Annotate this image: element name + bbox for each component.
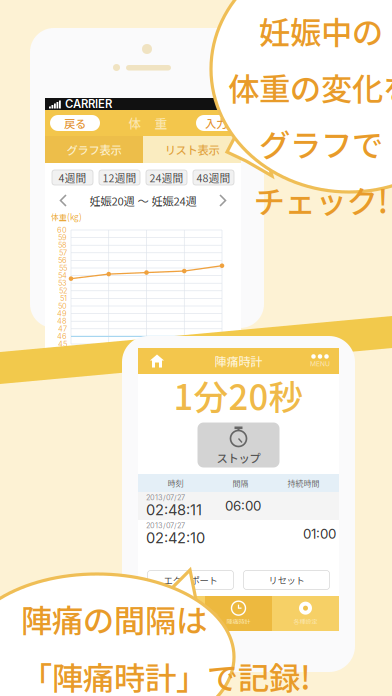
staticText: 妊娠中の xyxy=(259,8,383,53)
staticText: 06:00 xyxy=(225,498,261,514)
button[interactable]: リスト表示 xyxy=(143,136,241,163)
staticText: 50 xyxy=(58,302,67,310)
staticText: 陣痛時計 xyxy=(214,352,262,370)
button[interactable]: 入力 xyxy=(196,115,236,131)
staticText: 時刻 xyxy=(167,477,183,489)
staticText: ストップ xyxy=(216,449,260,466)
staticText: 1分20秒 xyxy=(173,370,303,420)
staticText: CARRIER xyxy=(65,97,112,111)
staticText: 間隔 xyxy=(232,477,248,489)
staticText: リセット xyxy=(268,573,304,587)
staticText: 51 xyxy=(60,294,67,303)
button[interactable]: 次の週 xyxy=(210,193,234,208)
staticText: 陣痛の間隔は xyxy=(21,596,207,641)
button[interactable]: ストップ xyxy=(197,422,279,467)
button[interactable]: エクスポート xyxy=(147,570,233,589)
staticText: リスト表示 xyxy=(164,141,219,158)
button[interactable]: 12週間 xyxy=(99,170,140,185)
staticText: 2013/07/27 xyxy=(146,521,185,530)
staticText: 24週間 xyxy=(149,170,183,185)
staticText: 12週間 xyxy=(102,170,136,185)
button[interactable]: 前の週 xyxy=(52,193,76,208)
staticText: 60 xyxy=(57,226,67,234)
staticText: 52 xyxy=(59,286,67,295)
staticText: 2013/07/27 xyxy=(146,493,185,502)
button[interactable]: 各種設定 xyxy=(272,596,339,631)
staticText: グラフで xyxy=(259,121,383,166)
button[interactable]: ホーム xyxy=(142,348,172,374)
staticText: 体重の変化を xyxy=(228,64,392,110)
staticText: 各種設定 xyxy=(293,617,317,626)
button[interactable]: 戻る xyxy=(50,115,100,131)
staticText: 体重(kg) xyxy=(51,211,82,223)
staticText: 58 xyxy=(58,241,67,250)
staticText: チェック! xyxy=(253,177,388,222)
button[interactable]: 4週間 xyxy=(52,170,93,185)
staticText: 48 xyxy=(57,317,67,326)
button[interactable]: メニュー xyxy=(305,348,335,374)
staticText: 4週間 xyxy=(58,170,86,185)
staticText: 陣痛時計 xyxy=(226,617,250,626)
staticText: 53 xyxy=(58,279,67,288)
staticText: 48週間 xyxy=(196,170,230,185)
staticText: グラフ表示 xyxy=(66,141,121,158)
staticText: 02:42:10 xyxy=(146,529,205,547)
button[interactable]: カレンダー xyxy=(138,596,205,631)
staticText: 持続時間 xyxy=(287,477,319,489)
staticText: 戻る xyxy=(64,115,86,131)
staticText: 「陣痛時計」で記録! xyxy=(21,653,311,696)
button[interactable]: 48週間 xyxy=(193,170,234,185)
button[interactable]: グラフ表示 xyxy=(45,136,143,163)
staticText: カレンダー xyxy=(156,617,186,626)
button[interactable]: リセット xyxy=(243,570,329,589)
staticText: 54 xyxy=(58,271,67,280)
button[interactable]: 24週間 xyxy=(146,170,187,185)
staticText: 妊娠20週 ～ 妊娠24週 xyxy=(89,192,196,209)
staticText: 体 重 xyxy=(128,114,167,132)
staticText: エクスポート xyxy=(163,573,217,587)
staticText: 入力 xyxy=(205,115,227,131)
staticText: 56 xyxy=(58,256,67,265)
staticText: 02:48:11 xyxy=(146,501,202,519)
staticText: 57 xyxy=(59,248,67,257)
staticText: 45 xyxy=(58,340,67,348)
staticText: 59 xyxy=(58,233,67,242)
button[interactable]: 陣痛時計 xyxy=(205,596,272,631)
staticText: 46 xyxy=(57,332,67,341)
staticText: 55 xyxy=(59,264,67,272)
staticText: 47 xyxy=(58,324,67,333)
staticText: 49 xyxy=(57,309,67,318)
staticText: 01:00 xyxy=(303,526,336,542)
staticText: MENU xyxy=(310,360,330,368)
